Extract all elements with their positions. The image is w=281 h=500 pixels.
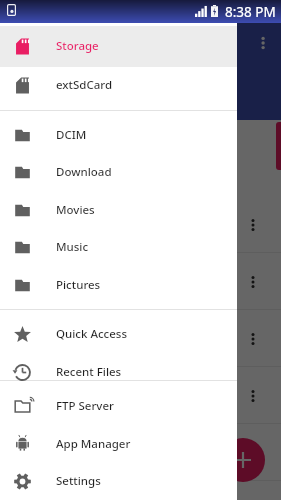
staticText: Recent Files <box>56 364 122 380</box>
staticText: App Manager <box>56 436 131 452</box>
staticText: FTP Server <box>56 398 114 414</box>
staticText: Storage <box>56 38 99 54</box>
staticText: Music <box>56 239 89 255</box>
button[interactable]: More options <box>241 213 265 237</box>
button[interactable]: Settings <box>0 463 237 499</box>
staticText: Settings <box>56 473 101 489</box>
staticText: Quick Access <box>56 326 128 342</box>
staticText: extSdCard <box>56 77 113 93</box>
button[interactable]: More options <box>0 424 281 481</box>
button[interactable]: extSdCard <box>0 67 237 103</box>
button[interactable]: More options <box>241 270 265 294</box>
button[interactable]: More options <box>241 327 265 351</box>
button[interactable]: Storage <box>0 28 237 64</box>
button[interactable]: Music <box>0 229 237 265</box>
button[interactable]: More options <box>0 367 281 424</box>
button[interactable]: Add <box>221 438 265 482</box>
staticText: 8:38 PM <box>225 3 276 21</box>
button[interactable]: FTP Server <box>0 388 237 424</box>
staticText: Download <box>56 164 112 180</box>
button[interactable]: More options <box>0 196 281 253</box>
button[interactable]: Quick Access <box>0 316 237 352</box>
button[interactable]: App Manager <box>0 426 237 462</box>
button[interactable]: DCIM <box>0 117 237 153</box>
staticText: Pictures <box>56 277 101 293</box>
button[interactable]: More options <box>0 253 281 310</box>
button[interactable]: Movies <box>0 192 237 228</box>
button[interactable]: Scroll <box>276 122 281 170</box>
staticText: Movies <box>56 202 95 218</box>
button[interactable]: More options <box>241 384 265 408</box>
button[interactable]: Pictures <box>0 267 237 303</box>
button[interactable]: More options <box>241 441 265 465</box>
button[interactable]: Recent Files <box>0 354 237 390</box>
button[interactable]: More options <box>0 481 281 500</box>
button[interactable]: More options <box>0 310 281 367</box>
staticText: DCIM <box>56 127 87 143</box>
button[interactable]: Download <box>0 154 237 190</box>
button[interactable]: More options <box>248 28 277 57</box>
